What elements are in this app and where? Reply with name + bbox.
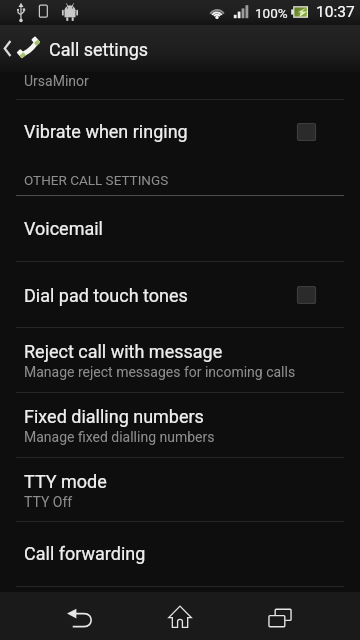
button[interactable]: Dial pad touch tones xyxy=(0,262,360,328)
staticText: Call settings xyxy=(49,39,149,60)
staticText: Voicemail xyxy=(24,218,103,239)
staticText: TTY Off xyxy=(24,494,73,510)
staticText: TTY mode xyxy=(24,471,107,492)
staticText: UrsaMinor xyxy=(24,73,89,89)
staticText: Vibrate when ringing xyxy=(24,121,188,142)
button[interactable]: Home xyxy=(130,592,230,640)
staticText: Reject call with message xyxy=(24,341,223,362)
button[interactable]: TTY mode xyxy=(0,458,360,522)
staticText: Manage fixed dialling numbers xyxy=(24,429,215,445)
button[interactable]: Recent apps xyxy=(230,592,330,640)
button[interactable]: Fixed dialling numbers xyxy=(0,393,360,458)
button[interactable]: Vibrate when ringing xyxy=(0,100,360,163)
button[interactable]: Reject call with message xyxy=(0,328,360,393)
button[interactable]: Call forwarding xyxy=(0,522,360,587)
staticText: Fixed dialling numbers xyxy=(24,406,204,427)
staticText: Manage reject messages for incoming call… xyxy=(24,364,296,380)
button[interactable]: Voicemail xyxy=(0,196,360,262)
staticText: 10:37 xyxy=(316,3,355,21)
button[interactable]: Back xyxy=(30,592,130,640)
staticText: Dial pad touch tones xyxy=(24,285,188,306)
button[interactable]: Navigate up xyxy=(0,25,50,72)
staticText: Call forwarding xyxy=(24,543,146,564)
button[interactable]: UrsaMinor xyxy=(0,72,360,100)
staticText: OTHER CALL SETTINGS xyxy=(24,172,169,188)
staticText: 100% xyxy=(255,5,288,21)
